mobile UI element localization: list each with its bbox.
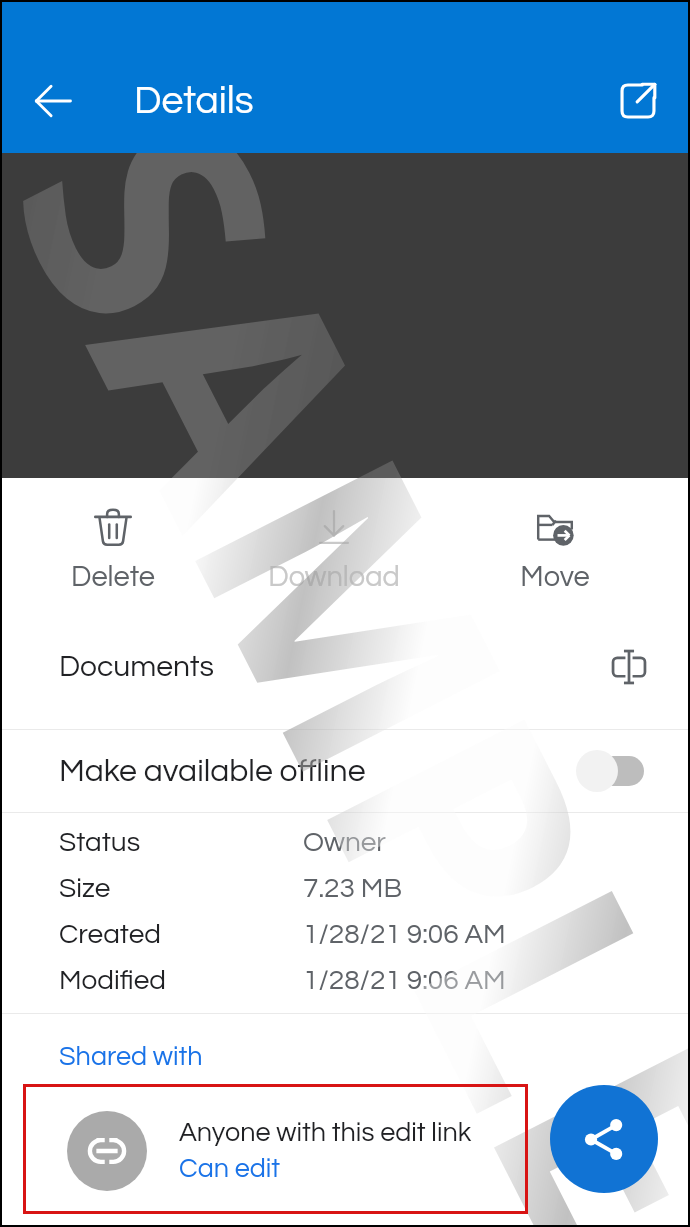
staticText: Documents — [59, 651, 214, 682]
button[interactable]: Make available offline — [2, 730, 688, 812]
button[interactable]: Delete — [2, 478, 223, 624]
button[interactable]: Anyone with this edit link — [2, 1087, 688, 1214]
staticText: 1/28/21 9:06 AM — [303, 920, 506, 949]
staticText: Can edit — [179, 1155, 281, 1183]
button[interactable]: Share — [550, 1085, 658, 1193]
staticText: Move — [520, 562, 590, 592]
staticText: Anyone with this edit link — [179, 1119, 472, 1147]
staticText: Delete — [71, 562, 155, 592]
button[interactable]: Download — [223, 478, 444, 624]
button[interactable]: Open in new window — [602, 65, 674, 137]
staticText: Shared with — [59, 1043, 203, 1071]
staticText: Status — [59, 828, 141, 857]
staticText: Created — [59, 920, 161, 949]
button[interactable]: Move — [444, 478, 665, 624]
staticText: SAMPLE — [2, 153, 688, 478]
staticText: Make available offline — [59, 755, 366, 788]
staticText: Owner — [303, 828, 386, 857]
button[interactable]: Back — [17, 65, 89, 137]
staticText: 1/28/21 9:06 AM — [303, 966, 506, 995]
button[interactable]: Documents — [2, 624, 688, 729]
staticText: Details — [134, 81, 254, 121]
staticText: Download — [268, 562, 400, 592]
staticText: 7.23 MB — [303, 874, 402, 903]
staticText: Size — [59, 874, 111, 903]
staticText: Modified — [59, 966, 166, 995]
staticText: SAMPLE — [2, 478, 688, 1225]
